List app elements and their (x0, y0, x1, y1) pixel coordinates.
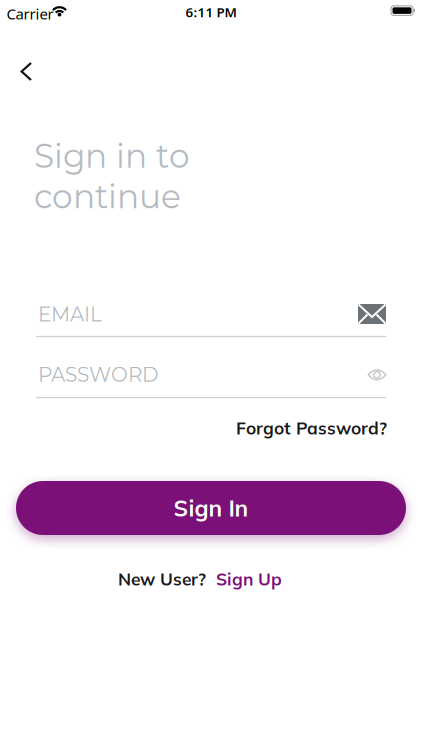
staticText: EMAIL (38, 302, 102, 327)
button[interactable]: Back (4, 49, 48, 93)
staticText: New User? (118, 568, 206, 590)
staticText: Sign In (173, 494, 248, 522)
button[interactable]: Show password (360, 358, 394, 392)
staticText: Sign Up (216, 568, 282, 590)
button[interactable]: Forgot Password? (227, 417, 387, 440)
staticText: 6:11 PM (185, 3, 236, 21)
staticText: Sign in to continue (34, 136, 190, 216)
staticText: Forgot Password? (236, 417, 387, 439)
staticText: Carrier (6, 3, 53, 24)
button[interactable]: Sign In (16, 481, 406, 535)
button[interactable]: Sign Up (216, 568, 282, 590)
staticText: PASSWORD (38, 362, 159, 387)
